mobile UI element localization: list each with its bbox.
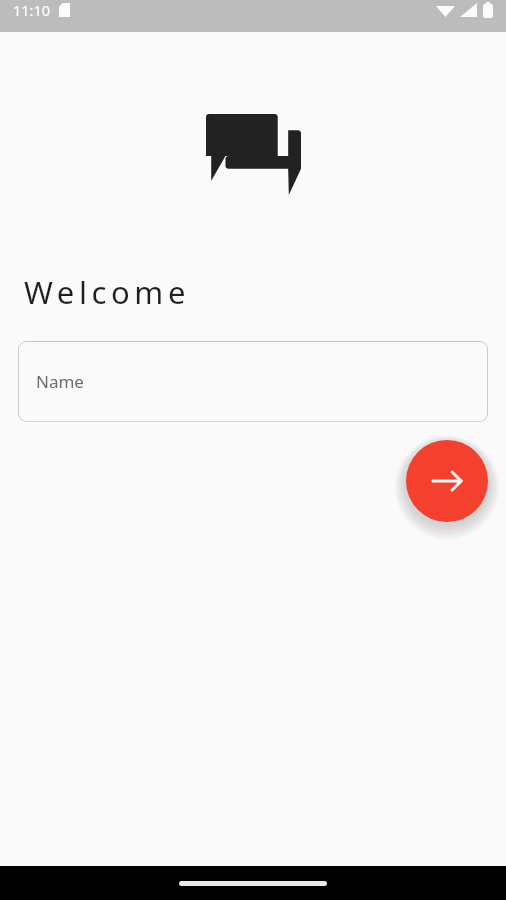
other: Chat logo bbox=[206, 103, 301, 195]
staticText: Welcome bbox=[24, 271, 190, 313]
staticText: Name bbox=[36, 370, 84, 393]
staticText: 11:10 bbox=[13, 0, 51, 20]
button[interactable]: Name bbox=[18, 341, 488, 422]
button[interactable]: Continue bbox=[406, 440, 488, 522]
button[interactable]: Home bbox=[179, 881, 327, 886]
